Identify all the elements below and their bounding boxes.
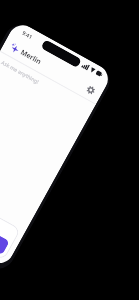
staticText: 9:41 [21, 29, 34, 40]
button[interactable]: Send [0, 233, 10, 255]
button[interactable]: Settings [85, 84, 97, 96]
button[interactable]: Send [0, 181, 21, 261]
staticText: Ask me anything! [0, 58, 41, 85]
staticText: Merlin [19, 48, 44, 67]
